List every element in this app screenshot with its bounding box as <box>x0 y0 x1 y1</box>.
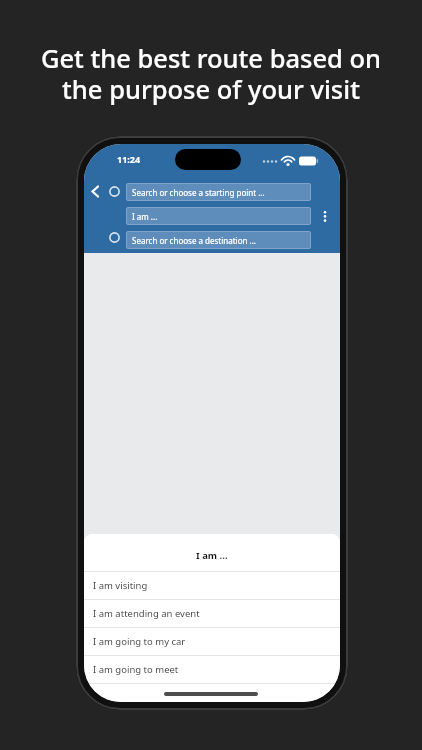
button[interactable]: I am ... <box>126 207 311 225</box>
button[interactable]: I am going to meet <box>84 655 340 683</box>
staticText: I am going to meet <box>93 663 179 676</box>
staticText: I am visiting <box>93 579 148 592</box>
button[interactable]: Search or choose a starting point ... <box>126 183 311 201</box>
button[interactable]: Search or choose a destination ... <box>126 231 311 249</box>
staticText: Get the best route based on the purpose … <box>0 41 422 107</box>
button[interactable]: I am attending an event <box>84 599 340 627</box>
staticText: I am going to my car <box>93 635 186 648</box>
staticText: 11:24 <box>117 153 141 165</box>
button[interactable]: I am ... <box>84 534 340 571</box>
staticText: Search or choose a destination ... <box>132 235 256 246</box>
staticText: Search or choose a starting point ... <box>132 187 265 198</box>
staticText: I am ... <box>196 549 228 562</box>
button[interactable]: I am visiting <box>84 571 340 599</box>
staticText: I am attending an event <box>93 607 200 620</box>
staticText: I am ... <box>132 211 158 222</box>
button[interactable]: I am going to my car <box>84 627 340 655</box>
